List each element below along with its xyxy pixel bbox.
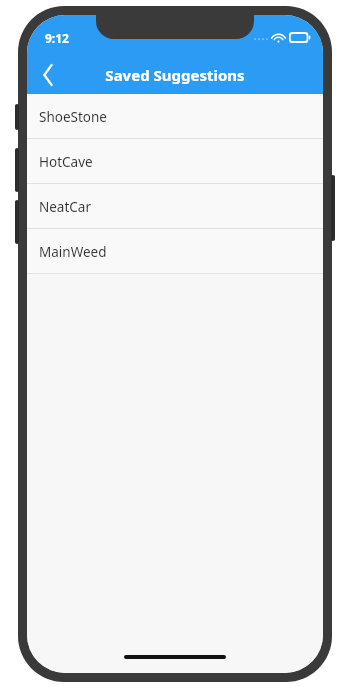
button[interactable]: NeatCar: [27, 184, 323, 229]
button[interactable]: ShoeStone: [27, 94, 323, 139]
staticText: NeatCar: [39, 198, 92, 216]
staticText: ShoeStone: [39, 108, 107, 126]
staticText: HotCave: [39, 153, 93, 171]
staticText: MainWeed: [39, 243, 107, 261]
staticText: 9:12: [45, 30, 69, 46]
staticText: Saved Suggestions: [105, 65, 245, 85]
button[interactable]: Back: [27, 56, 69, 94]
button[interactable]: MainWeed: [27, 229, 323, 274]
button[interactable]: HotCave: [27, 139, 323, 184]
